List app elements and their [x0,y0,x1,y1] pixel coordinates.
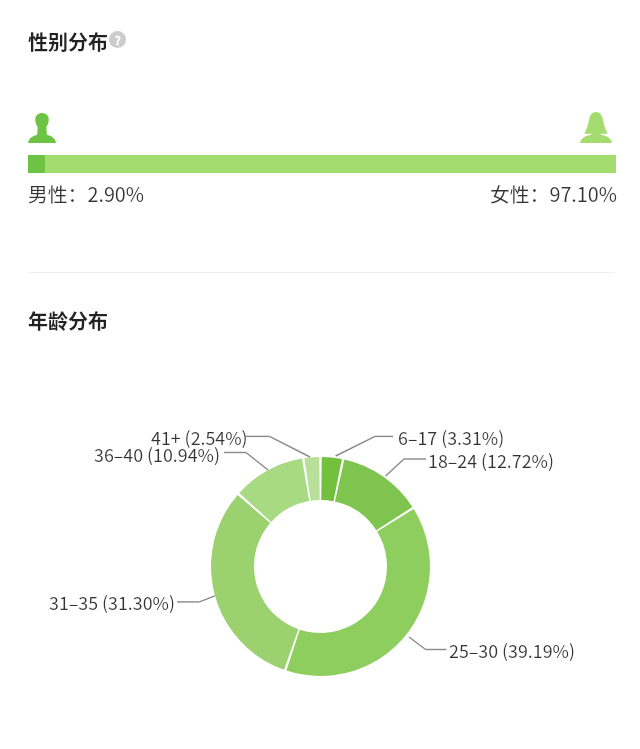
staticText: 男性：2.90% [28,179,145,208]
staticText: ? [115,31,121,48]
staticText: 性别分布 [28,27,108,56]
button[interactable]: 女性 [580,112,612,143]
staticText: 6–17 (3.31%) [398,424,505,450]
button[interactable]: 年龄分布环形图 [211,457,430,676]
staticText: 31–35 (31.30%) [49,589,175,615]
staticText: 41+ (2.54%) [151,424,248,450]
button[interactable]: 性别分布说明 [109,31,126,48]
button[interactable]: 男性 2.90%，女性 97.10% [28,155,616,173]
staticText: 女性：97.10% [490,179,618,208]
staticText: 年龄分布 [28,306,108,335]
button[interactable]: 男性 [28,112,56,143]
staticText: 25–30 (39.19%) [449,637,575,663]
staticText: 18–24 (12.72%) [428,447,554,473]
staticText: 36–40 (10.94%) [94,441,220,467]
